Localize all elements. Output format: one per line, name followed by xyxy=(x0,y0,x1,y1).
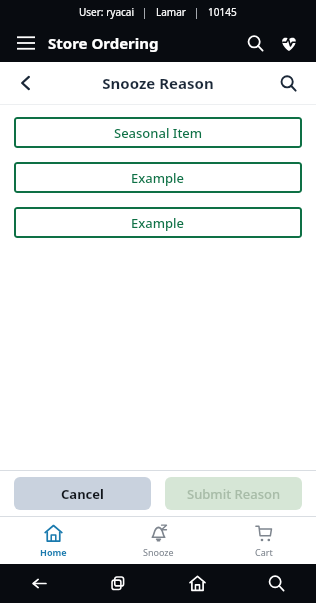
button[interactable]: Recents xyxy=(79,564,158,603)
button[interactable]: Home xyxy=(158,564,237,603)
staticText: Cart xyxy=(255,546,273,558)
button[interactable]: Cancel xyxy=(14,477,151,510)
button[interactable]: Home xyxy=(0,517,106,564)
button[interactable]: Search xyxy=(272,67,304,99)
staticText: Submit Reason xyxy=(187,485,281,503)
button[interactable]: Back xyxy=(10,67,42,99)
button[interactable]: Menu xyxy=(14,31,38,55)
button[interactable]: Snooze xyxy=(106,517,211,564)
button[interactable]: Search xyxy=(242,30,268,56)
button[interactable]: Health xyxy=(276,30,302,56)
staticText: User: ryacai xyxy=(79,5,134,19)
staticText: Snooze Reason xyxy=(102,73,214,93)
button[interactable]: Seasonal Item xyxy=(14,117,302,148)
button[interactable]: Example xyxy=(14,162,302,193)
staticText: 10145 xyxy=(208,5,237,19)
staticText: Example xyxy=(131,214,185,232)
staticText: Store Ordering xyxy=(48,33,159,53)
staticText: Home xyxy=(40,546,67,558)
button[interactable]: Search xyxy=(237,564,316,603)
staticText: Seasonal Item xyxy=(114,124,203,142)
button[interactable]: Back xyxy=(0,564,79,603)
button[interactable]: Example xyxy=(14,207,302,238)
button[interactable]: Cart xyxy=(211,517,316,564)
staticText: | xyxy=(186,5,208,19)
staticText: Cancel xyxy=(61,485,104,503)
button[interactable]: Submit Reason xyxy=(165,477,302,510)
staticText: Lamar xyxy=(156,5,186,19)
staticText: Example xyxy=(131,169,185,187)
staticText: | xyxy=(134,5,156,19)
staticText: Snooze xyxy=(143,546,174,558)
